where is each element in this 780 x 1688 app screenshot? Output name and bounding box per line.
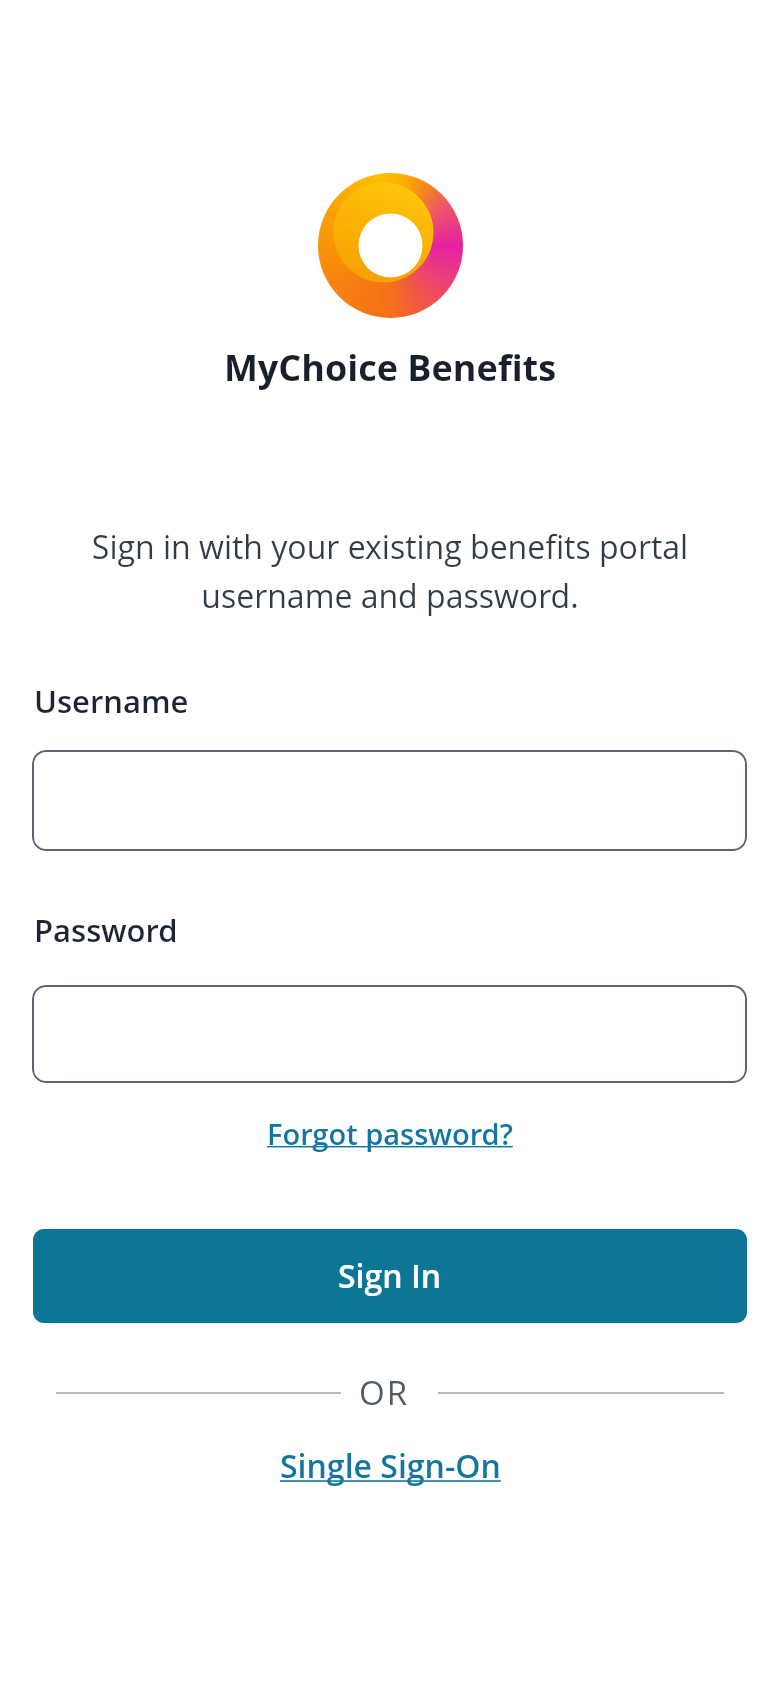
button[interactable]	[32, 750, 747, 851]
staticText: OR	[359, 1370, 410, 1415]
staticText: MyChoice Benefits	[0, 343, 780, 392]
staticText: Sign In	[338, 1254, 442, 1298]
staticText: Username	[34, 680, 189, 722]
button[interactable]: Sign In	[33, 1229, 747, 1323]
button[interactable]: Forgot password?	[267, 1114, 513, 1153]
staticText: Single Sign-On	[280, 1444, 501, 1488]
button[interactable]: Single Sign-On	[280, 1444, 501, 1488]
staticText: Password	[34, 909, 178, 951]
button[interactable]	[32, 985, 747, 1083]
staticText: Sign in with your existing benefits port…	[0, 525, 780, 617]
staticText: Forgot password?	[267, 1114, 513, 1153]
